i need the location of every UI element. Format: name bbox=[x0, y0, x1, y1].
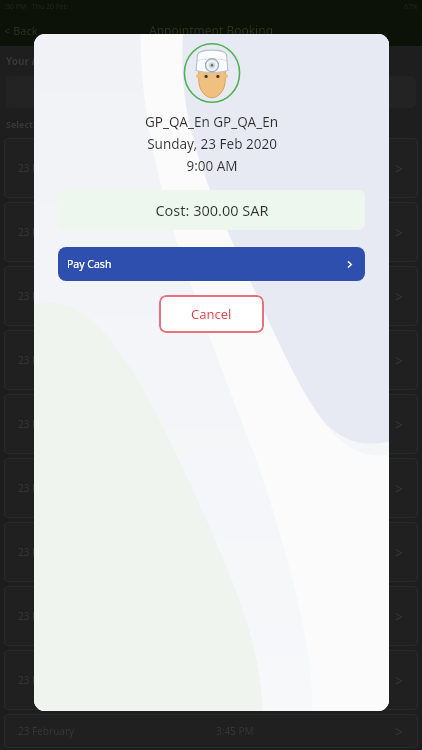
staticText: > bbox=[395, 671, 404, 690]
staticText: > bbox=[395, 479, 404, 498]
staticText: 3:45 PM bbox=[216, 724, 254, 738]
staticText: Select Your Time bbox=[6, 118, 81, 130]
staticText: :30 PM Thu 20 Feb bbox=[4, 2, 68, 12]
staticText: 23 February bbox=[18, 724, 75, 738]
staticText: 3:45 PM bbox=[216, 161, 254, 175]
staticText: 23 February bbox=[18, 225, 75, 239]
staticText: Cost: 300.00 SAR bbox=[155, 200, 269, 220]
staticText: 23 February bbox=[18, 353, 75, 367]
staticText: 23 February bbox=[18, 673, 75, 687]
staticText: 23 February bbox=[18, 417, 75, 431]
staticText: 23 February bbox=[18, 609, 75, 623]
staticText: > bbox=[395, 287, 404, 306]
staticText: < Back bbox=[4, 23, 38, 38]
staticText: Your Appointment bbox=[6, 54, 98, 68]
staticText: > bbox=[395, 543, 404, 562]
staticText: > bbox=[395, 223, 404, 242]
staticText: 3:45 PM bbox=[216, 225, 254, 239]
staticText: > bbox=[395, 351, 404, 370]
staticText: GP_QA_En GP_QA_En bbox=[145, 113, 278, 131]
staticText: Sunday, 23 Feb 2020 bbox=[147, 135, 277, 153]
staticText: > bbox=[395, 159, 404, 178]
staticText: 3:45 PM bbox=[216, 609, 254, 623]
staticText: 3:45 PM bbox=[216, 417, 254, 431]
staticText: Pay Cash bbox=[67, 257, 112, 271]
staticText: > bbox=[395, 607, 404, 626]
staticText: 67% bbox=[404, 2, 418, 12]
staticText: > bbox=[395, 722, 404, 741]
button[interactable]: Cancel bbox=[159, 295, 264, 333]
staticText: 9:00 AM bbox=[186, 157, 238, 175]
staticText: Cancel bbox=[191, 305, 232, 323]
button[interactable]: Pay Cash bbox=[58, 247, 365, 281]
staticText: 23 February bbox=[18, 481, 75, 495]
staticText: Appointment Booking bbox=[149, 22, 274, 38]
staticText: 3:45 PM bbox=[216, 289, 254, 303]
staticText: 3:45 PM bbox=[216, 545, 254, 559]
staticText: 23 February bbox=[18, 289, 75, 303]
staticText: > bbox=[395, 415, 404, 434]
staticText: 23 February bbox=[18, 161, 75, 175]
staticText: 23 February bbox=[18, 545, 75, 559]
